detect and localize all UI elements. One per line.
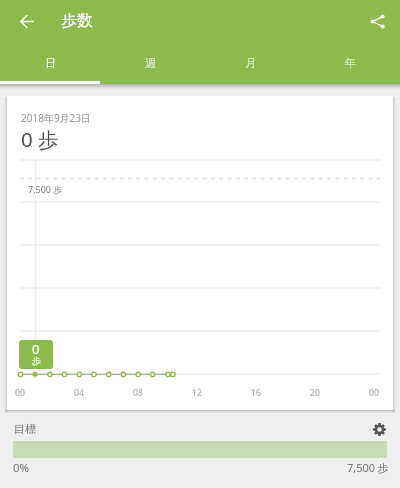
button[interactable]: Share — [363, 7, 391, 35]
button[interactable]: 月 — [200, 42, 300, 84]
staticText: 00 — [369, 387, 379, 399]
staticText: 年 — [345, 56, 356, 70]
staticText: 歩 — [32, 355, 41, 366]
staticText: 20 — [310, 387, 320, 399]
staticText: 04 — [74, 387, 84, 399]
staticText: 歩数 — [61, 11, 93, 31]
staticText: 0% — [13, 460, 30, 476]
staticText: 0 歩 — [21, 125, 59, 153]
button[interactable]: 日 — [0, 42, 100, 84]
button[interactable]: 0 — [19, 340, 53, 369]
staticText: 00 — [15, 387, 25, 399]
staticText: 日 — [45, 56, 56, 70]
staticText: 7,500 歩 — [28, 183, 63, 195]
staticText: 2018年9月23日 — [21, 111, 92, 125]
staticText: 目標 — [14, 422, 36, 436]
staticText: 0 — [32, 340, 40, 358]
button[interactable]: 週 — [100, 42, 200, 84]
staticText: 7,500 歩 — [347, 460, 389, 475]
staticText: 週 — [145, 56, 156, 70]
staticText: 16 — [251, 387, 261, 399]
staticText: 12 — [192, 387, 202, 399]
button[interactable]: Back — [13, 7, 41, 35]
button[interactable]: 年 — [300, 42, 400, 84]
button[interactable]: Settings — [369, 419, 389, 439]
staticText: 月 — [245, 56, 256, 70]
staticText: 08 — [133, 387, 143, 399]
